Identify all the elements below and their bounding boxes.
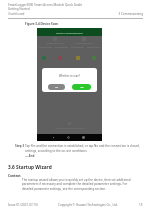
staticText: 3.6 Startup Wizard <box>8 164 52 171</box>
button[interactable]: Home <box>67 136 70 139</box>
button[interactable]: No <box>48 84 65 90</box>
staticText: ----End <box>25 154 35 158</box>
staticText: Tap Yes and the connection is establishe… <box>25 144 140 148</box>
staticText: Context <box>8 174 21 178</box>
staticText: Figure 3-4 Device Scan <box>25 22 59 26</box>
staticText: Copyright © Huawei Technologies Co., Ltd… <box>58 203 118 207</box>
staticText: 3 Commissioning <box>100 12 143 16</box>
staticText: 15 <box>139 203 143 207</box>
staticText: No <box>55 86 59 89</box>
button[interactable]: tool <box>42 56 46 60</box>
button[interactable] <box>73 37 95 44</box>
staticText: Device Commissioning <box>56 31 83 34</box>
staticText: parameters if necessary and complete the… <box>22 182 128 186</box>
staticText: The startup wizard allows you to quickly… <box>22 178 131 182</box>
button[interactable]: Recents <box>82 136 85 139</box>
staticText: Issue 01 (2021-07-15) <box>8 203 38 207</box>
button[interactable]: Back <box>52 136 55 139</box>
staticText: detailed parameter settings, see the cor… <box>22 187 106 191</box>
staticText: Yes <box>80 86 84 89</box>
button[interactable]: tool <box>58 56 62 60</box>
staticText: Step 3 <box>15 144 25 148</box>
button[interactable] <box>44 37 66 44</box>
button[interactable]: Device Commissioning <box>37 28 102 36</box>
staticText: settings, according to the on-site condi… <box>25 149 88 153</box>
button[interactable]: Yes <box>72 84 91 90</box>
staticText: Whether to scan? <box>42 74 97 78</box>
staticText: SmartLogger3000 Smart Access Module Quic… <box>8 3 83 7</box>
staticText: 3 until used <box>8 12 25 16</box>
staticText: Getting Started <box>8 7 30 11</box>
